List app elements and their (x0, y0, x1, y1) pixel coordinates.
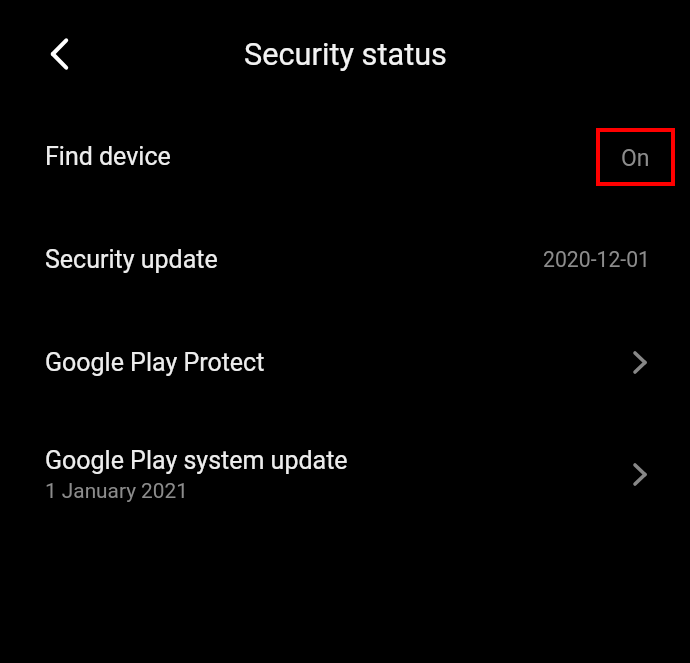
staticText: Google Play Protect (45, 348, 265, 377)
button[interactable]: Find device (0, 105, 690, 208)
staticText: 2020-12-01 (543, 247, 650, 272)
staticText: Security update (45, 245, 218, 274)
button[interactable]: Google Play Protect (0, 311, 690, 414)
staticText: Find device (45, 142, 171, 171)
staticText: Security status (244, 37, 447, 73)
staticText: On (621, 145, 650, 172)
staticText: 1 January 2021 (45, 479, 188, 503)
button[interactable]: Google Play system update (0, 414, 690, 535)
button[interactable]: Navigate up (36, 33, 82, 79)
staticText: Google Play system update (45, 446, 348, 475)
button[interactable]: Security update (0, 208, 690, 311)
